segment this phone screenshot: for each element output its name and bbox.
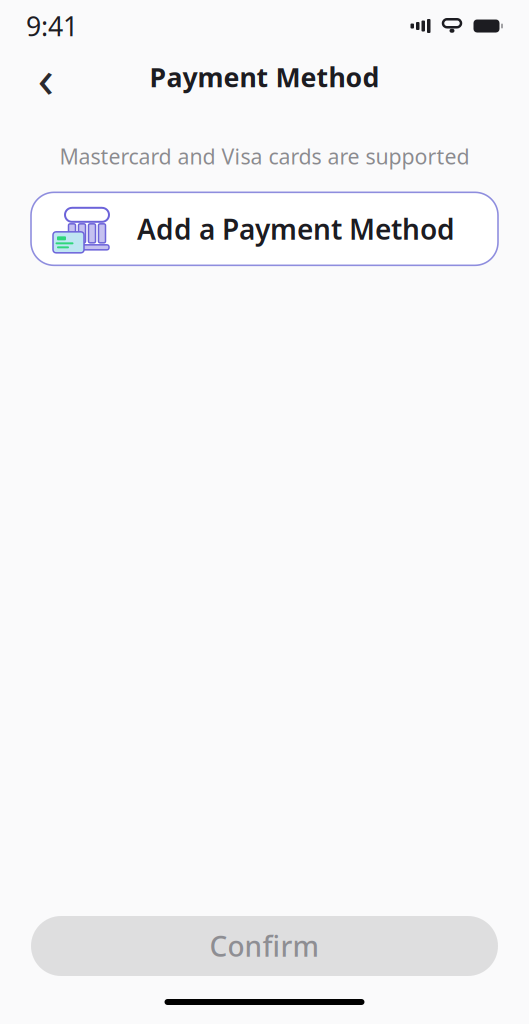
staticText: Mastercard and Visa cards are supported bbox=[59, 142, 469, 170]
staticText: 9:41 bbox=[26, 8, 78, 44]
button[interactable]: Add a Payment Method bbox=[31, 192, 498, 265]
button[interactable]: Back bbox=[24, 55, 68, 99]
button[interactable]: Confirm bbox=[31, 916, 498, 976]
staticText: Add a Payment Method bbox=[137, 210, 455, 247]
staticText: ‹ bbox=[37, 42, 54, 112]
staticText: Payment Method bbox=[149, 59, 379, 95]
staticText: Confirm bbox=[209, 927, 319, 965]
